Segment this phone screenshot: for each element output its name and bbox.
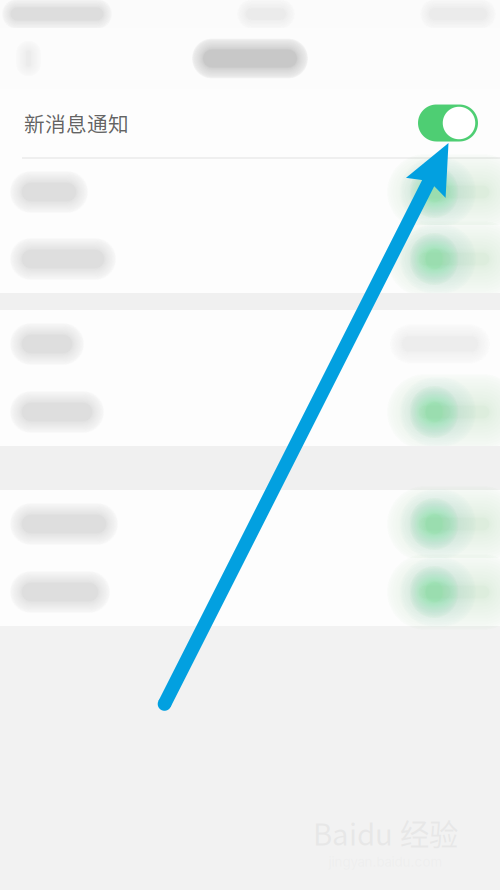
button[interactable] [0, 558, 500, 626]
staticText: 新消息通知 [24, 108, 129, 138]
staticText: Baidu 经验 [313, 811, 458, 854]
button[interactable] [0, 378, 500, 446]
button[interactable]: 新消息通知 [0, 89, 500, 157]
button[interactable] [0, 225, 500, 293]
button[interactable] [0, 310, 500, 378]
button[interactable] [0, 159, 500, 225]
button[interactable] [0, 490, 500, 558]
